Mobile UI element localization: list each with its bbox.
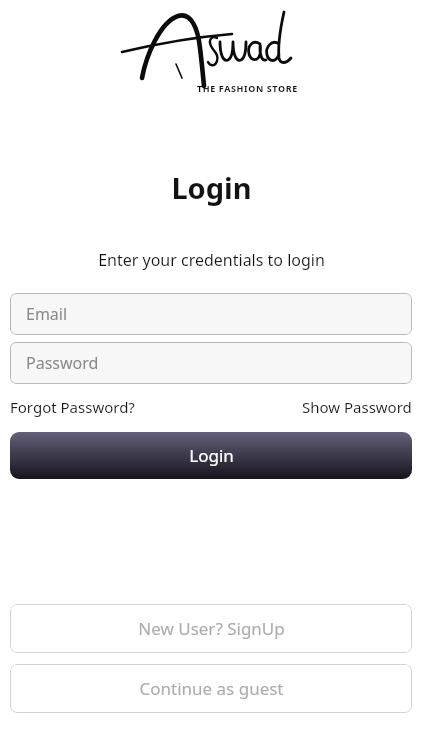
staticText: Continue as guest: [139, 677, 284, 700]
staticText: Login: [189, 444, 234, 467]
button[interactable]: Email: [10, 293, 412, 335]
staticText: Password: [26, 352, 99, 374]
staticText: New User? SignUp: [138, 617, 285, 640]
button[interactable]: New User? SignUp: [10, 604, 412, 653]
staticText: Forgot Password?: [10, 397, 135, 417]
staticText: Show Password: [302, 397, 412, 417]
button[interactable]: Forgot Password?: [10, 395, 135, 419]
button[interactable]: Continue as guest: [10, 664, 412, 713]
staticText: Enter your credentials to login: [98, 249, 325, 271]
staticText: THE FASHION STORE: [197, 82, 298, 94]
staticText: Login: [171, 168, 252, 207]
button[interactable]: Show Password: [302, 395, 412, 419]
button[interactable]: Password: [10, 342, 412, 384]
staticText: Email: [26, 303, 68, 325]
button[interactable]: Login: [10, 432, 412, 479]
other: Aswad, The Fashion Store: [116, 4, 306, 100]
